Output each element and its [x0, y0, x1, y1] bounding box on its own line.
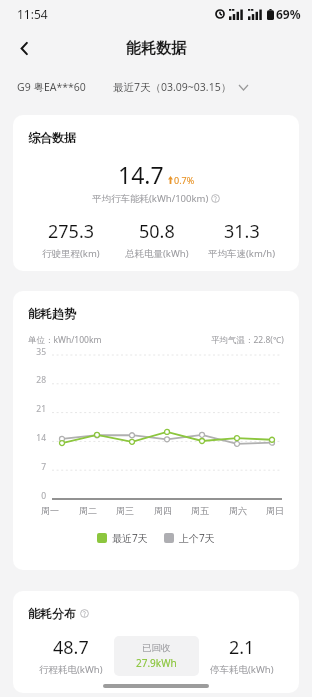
staticText: 21 [36, 403, 46, 413]
staticText: 0 [41, 490, 46, 500]
staticText: 48.7 [53, 635, 89, 660]
staticText: 周三 [116, 505, 134, 516]
staticText: 平均气温：22.8(℃) [211, 334, 284, 346]
staticText: 275.3 [48, 219, 95, 244]
staticText: 单位：kWh/100km [28, 334, 102, 346]
staticText: 7 [41, 461, 46, 471]
staticText: 平均车速(km/h) [208, 247, 276, 260]
staticText: 35 [36, 346, 46, 356]
button[interactable]: 能耗趋势 [13, 291, 299, 570]
staticText: 50.8 [139, 219, 175, 244]
staticText: 周一 [41, 505, 59, 516]
staticText: 周五 [191, 505, 209, 516]
staticText: 综合数据 [28, 130, 76, 145]
staticText: 周六 [229, 505, 247, 516]
staticText: 能耗分布 [28, 606, 76, 621]
button[interactable]: Back [6, 30, 42, 66]
staticText: 周四 [154, 505, 172, 516]
staticText: 上个7天 [179, 531, 215, 545]
staticText: 周日 [266, 505, 284, 516]
staticText: 周二 [79, 505, 97, 516]
button[interactable]: 能耗分布 [13, 591, 299, 693]
button[interactable]: G9 粤EA***60 [17, 76, 86, 98]
staticText: 28 [36, 374, 46, 384]
staticText: 14 [36, 432, 46, 442]
staticText: 能耗趋势 [28, 306, 76, 321]
staticText: 行驶里程(km) [42, 247, 100, 260]
staticText: 能耗数据 [126, 39, 186, 58]
staticText: 11:54 [17, 6, 48, 22]
staticText: 69% [276, 6, 301, 22]
staticText: 0.7% [174, 174, 195, 186]
button[interactable]: 综合数据 [13, 115, 299, 271]
staticText: 2.1 [229, 635, 255, 660]
staticText: 最近7天（03.09~03.15） [113, 80, 232, 94]
button[interactable]: 最近7天（03.09~03.15） [113, 76, 295, 98]
staticText: 已回收 [142, 642, 171, 654]
staticText: G9 粤EA***60 [17, 80, 86, 94]
staticText: 平均行车能耗(kWh/100km) [92, 192, 209, 205]
staticText: 最近7天 [112, 531, 148, 545]
staticText: 31.3 [224, 219, 260, 244]
staticText: 总耗电量(kWh) [125, 247, 189, 260]
staticText: 27.9kWh [136, 656, 177, 670]
staticText: 14.7 [118, 159, 164, 190]
staticText: 行程耗电(kWh) [39, 663, 103, 676]
staticText: 停车耗电(kWh) [210, 663, 274, 676]
